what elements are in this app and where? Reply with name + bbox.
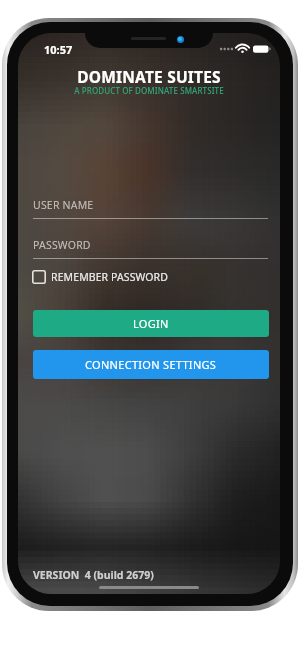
button[interactable]: CONNECTION SETTINGS (33, 350, 269, 379)
staticText: VERSION 4 (build 2679) (33, 568, 154, 582)
button[interactable]: LOGIN (33, 310, 269, 337)
button[interactable]: REMEMBER PASSWORD (32, 268, 169, 286)
staticText: PASSWORD (33, 238, 91, 252)
staticText: CONNECTION SETTINGS (85, 357, 217, 372)
button[interactable]: USER NAME (33, 198, 268, 212)
button[interactable]: PASSWORD (33, 238, 268, 252)
staticText: REMEMBER PASSWORD (51, 270, 169, 284)
staticText: DOMINATE SUITES (18, 66, 280, 87)
staticText: LOGIN (133, 316, 169, 331)
staticText: A PRODUCT OF DOMINATE SMARTSITE (18, 85, 280, 96)
staticText: USER NAME (33, 198, 94, 212)
staticText: 10:57 (44, 42, 73, 57)
